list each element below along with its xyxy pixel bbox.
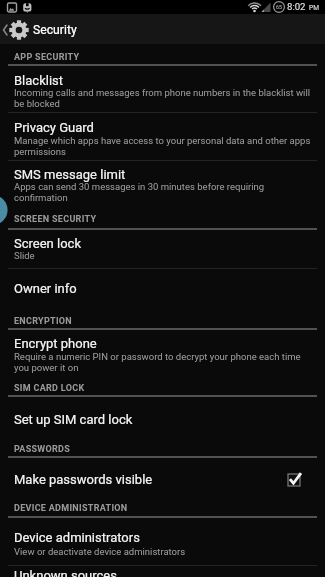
staticText: SIM CARD LOCK [14,383,85,394]
button[interactable]: Device administrators [0,517,325,565]
staticText: Require a numeric PIN or password to dec… [14,351,301,373]
staticText: Owner info [14,281,77,296]
staticText: APP SECURITY [14,52,80,63]
button[interactable]: Security [0,15,77,44]
staticText: Apps can send 30 messages in 30 minutes … [14,181,265,203]
staticText: Screen lock [14,236,81,251]
staticText: Slide [14,250,35,261]
staticText: Set up SIM card lock [14,412,133,427]
button[interactable]: Screen lock [0,229,325,268]
staticText: 65 [276,4,282,10]
staticText: Incoming calls and messages from phone n… [14,87,311,109]
staticText: Blacklist [14,73,64,88]
staticText: Device administrators [14,530,140,545]
button[interactable]: Blacklist [0,66,325,112]
button[interactable]: Privacy Guard [0,113,325,160]
button[interactable]: Owner info [0,269,325,305]
staticText: Make passwords visible [14,472,153,487]
staticText: Privacy Guard [14,120,94,135]
staticText: Manage which apps have access to your pe… [14,135,311,157]
staticText: View or deactivate device administrators [14,546,186,557]
button[interactable]: Set up SIM card lock [0,397,325,435]
staticText: 8:02 [287,1,306,12]
staticText: PASSWORDS [14,444,71,455]
staticText: SMS message limit [14,167,126,182]
button[interactable]: Make passwords visible [0,457,325,495]
staticText: SCREEN SECURITY [14,214,97,225]
button[interactable]: Encrypt phone [0,330,325,376]
staticText: DEVICE ADMINISTRATION [14,503,128,514]
button[interactable]: SMS message limit [0,161,325,207]
staticText: Unknown sources [14,568,117,577]
staticText: Encrypt phone [14,336,97,351]
staticText: ENCRYPTION [14,316,72,327]
staticText: PM [309,4,319,12]
button[interactable]: Unknown sources [0,566,325,577]
staticText: Security [33,23,77,37]
